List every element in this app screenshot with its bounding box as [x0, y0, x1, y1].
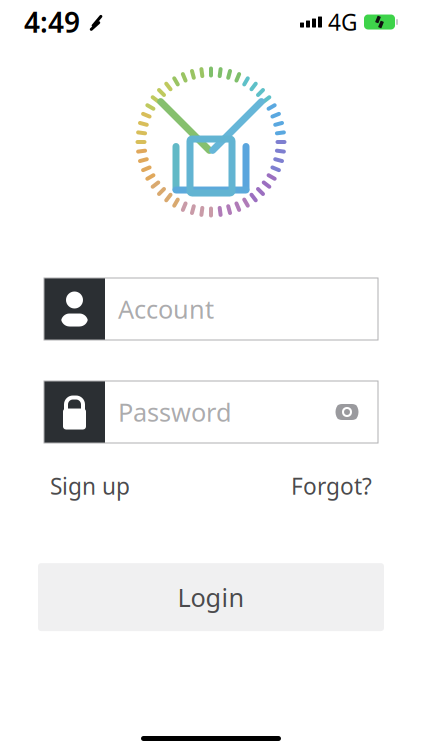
staticText: Sign up [50, 471, 130, 501]
staticText: Account [118, 292, 214, 326]
staticText: Forgot? [291, 471, 372, 501]
button[interactable]: Password [0, 381, 422, 443]
staticText: 4:49 [24, 3, 80, 41]
staticText: Login [177, 580, 244, 614]
staticText: Password [118, 395, 232, 429]
staticText: 4G [328, 7, 358, 37]
button[interactable]: Sign up [50, 465, 130, 507]
button[interactable]: Forgot? [291, 465, 372, 507]
button[interactable]: Login [38, 563, 384, 631]
button[interactable]: Account [0, 278, 422, 340]
